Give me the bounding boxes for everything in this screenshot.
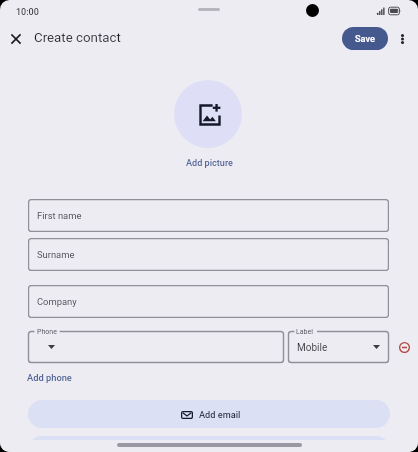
button[interactable]: Add address	[28, 436, 390, 452]
staticText: First name	[37, 210, 82, 221]
button[interactable]: Save	[342, 27, 388, 50]
staticText: Save	[355, 33, 375, 44]
staticText: Phone	[37, 328, 57, 336]
button[interactable]: First name	[28, 199, 389, 232]
button[interactable]: Company	[28, 285, 389, 318]
button[interactable]: Add phone	[27, 372, 72, 383]
button[interactable]: Label: Mobile	[288, 331, 389, 363]
staticText: Label	[296, 328, 313, 336]
staticText: Add address	[194, 445, 246, 452]
staticText: 10:00	[16, 7, 39, 18]
button[interactable]: Phone number	[28, 331, 284, 363]
staticText: Surname	[37, 249, 75, 260]
staticText: Company	[37, 296, 77, 307]
staticText: Add email	[199, 409, 241, 420]
button[interactable]: Add email	[28, 400, 390, 428]
button[interactable]: Add picture	[180, 156, 238, 170]
button[interactable]: Remove phone	[394, 337, 414, 357]
button[interactable]: Add picture	[174, 80, 242, 148]
button[interactable]: Surname	[28, 238, 389, 271]
staticText: Create contact	[34, 30, 121, 46]
staticText: Add picture	[186, 158, 233, 169]
button[interactable]: Close	[4, 27, 28, 51]
button[interactable]: More options	[391, 28, 413, 50]
staticText: Mobile	[297, 342, 328, 354]
